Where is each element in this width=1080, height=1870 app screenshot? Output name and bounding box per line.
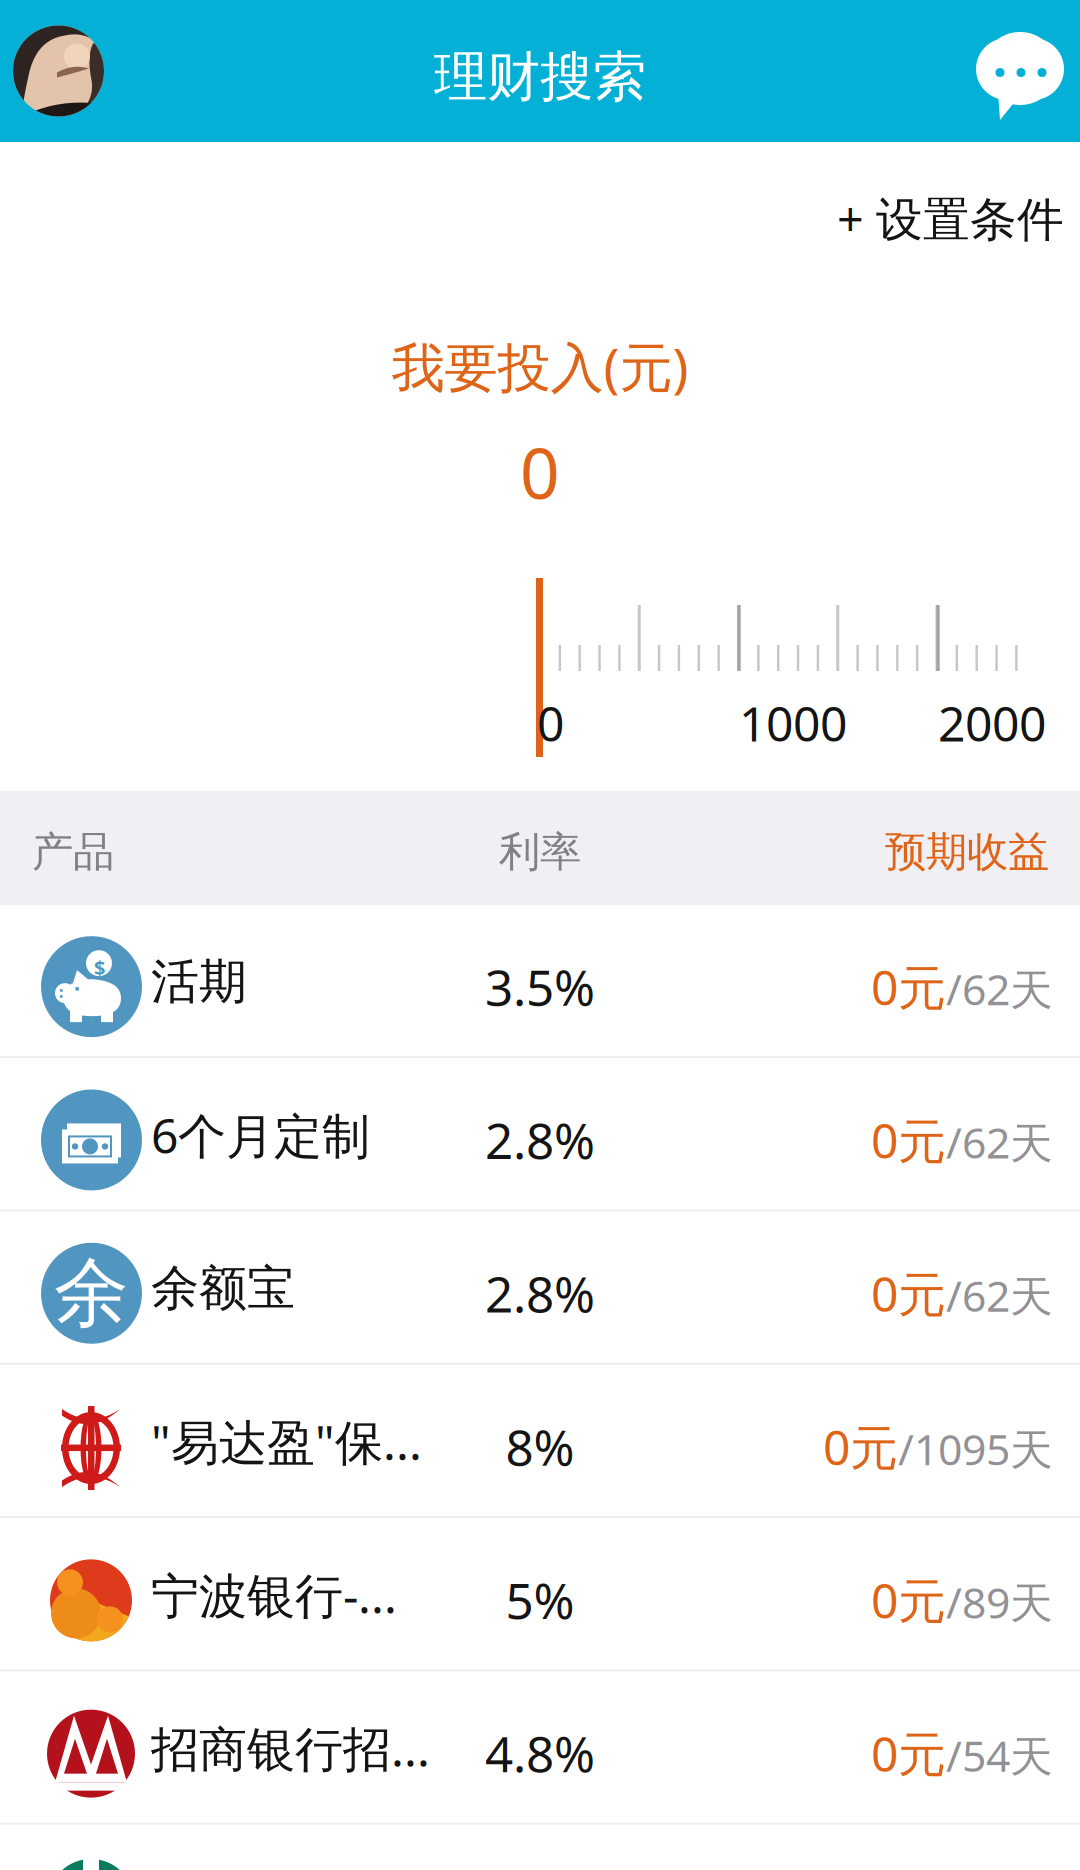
staticText: 6个月定制 xyxy=(151,1103,370,1167)
staticText: /1095天 xyxy=(898,1420,1053,1477)
staticText: 余额宝 xyxy=(151,1259,295,1318)
staticText: 预期收益 xyxy=(885,827,1049,877)
staticText: 1000 xyxy=(739,691,847,755)
staticText: 我要投入(元) xyxy=(391,331,688,402)
staticText: 0元 xyxy=(871,1108,946,1172)
staticText: 招商银行招... xyxy=(151,1716,430,1780)
staticText: 2.8% xyxy=(485,1107,595,1173)
button[interactable]: + 设置条件 xyxy=(837,187,1064,249)
staticText: 3.5% xyxy=(485,954,595,1019)
staticText: /62天 xyxy=(946,960,1053,1017)
button[interactable]: Profile xyxy=(13,25,104,116)
staticText: 0元 xyxy=(871,1568,946,1632)
staticText: 0 xyxy=(520,426,560,518)
staticText: 0元 xyxy=(823,1415,898,1478)
staticText: 0 xyxy=(537,691,564,755)
staticText: 2.8% xyxy=(485,1260,595,1326)
button[interactable]: 6个月定制 xyxy=(0,1058,1080,1212)
staticText: 0元 xyxy=(871,1261,946,1325)
staticText: /62天 xyxy=(946,1267,1053,1324)
staticText: 8% xyxy=(505,1414,574,1479)
button[interactable]: 招商银行招... xyxy=(0,1671,1080,1825)
button[interactable]: "易达盈"保... xyxy=(0,1365,1080,1518)
staticText: 产品 xyxy=(32,827,114,877)
button[interactable]: 宁波银行-... xyxy=(0,1518,1080,1671)
staticText: 利率 xyxy=(499,827,581,877)
button[interactable]: 余 xyxy=(0,1212,1080,1365)
button[interactable]: Messages xyxy=(976,32,1064,122)
staticText: 4.8% xyxy=(485,1720,595,1786)
staticText: 0元 xyxy=(871,1721,946,1785)
staticText: "易达盈"保... xyxy=(151,1410,422,1473)
staticText: 2000 xyxy=(938,691,1046,755)
staticText: /89天 xyxy=(946,1574,1053,1630)
staticText: 0元 xyxy=(871,955,946,1018)
staticText: 余 xyxy=(54,1247,129,1339)
staticText: 宁波银行-... xyxy=(151,1563,397,1627)
staticText: 活期 xyxy=(151,952,247,1011)
button[interactable]: $ xyxy=(0,905,1080,1058)
staticText: 5% xyxy=(505,1567,574,1633)
staticText: + 设置条件 xyxy=(837,187,1064,249)
staticText: /54天 xyxy=(946,1727,1053,1784)
staticText: /62天 xyxy=(946,1114,1053,1170)
staticText: $ xyxy=(94,954,105,981)
staticText: 理财搜索 xyxy=(434,44,646,110)
